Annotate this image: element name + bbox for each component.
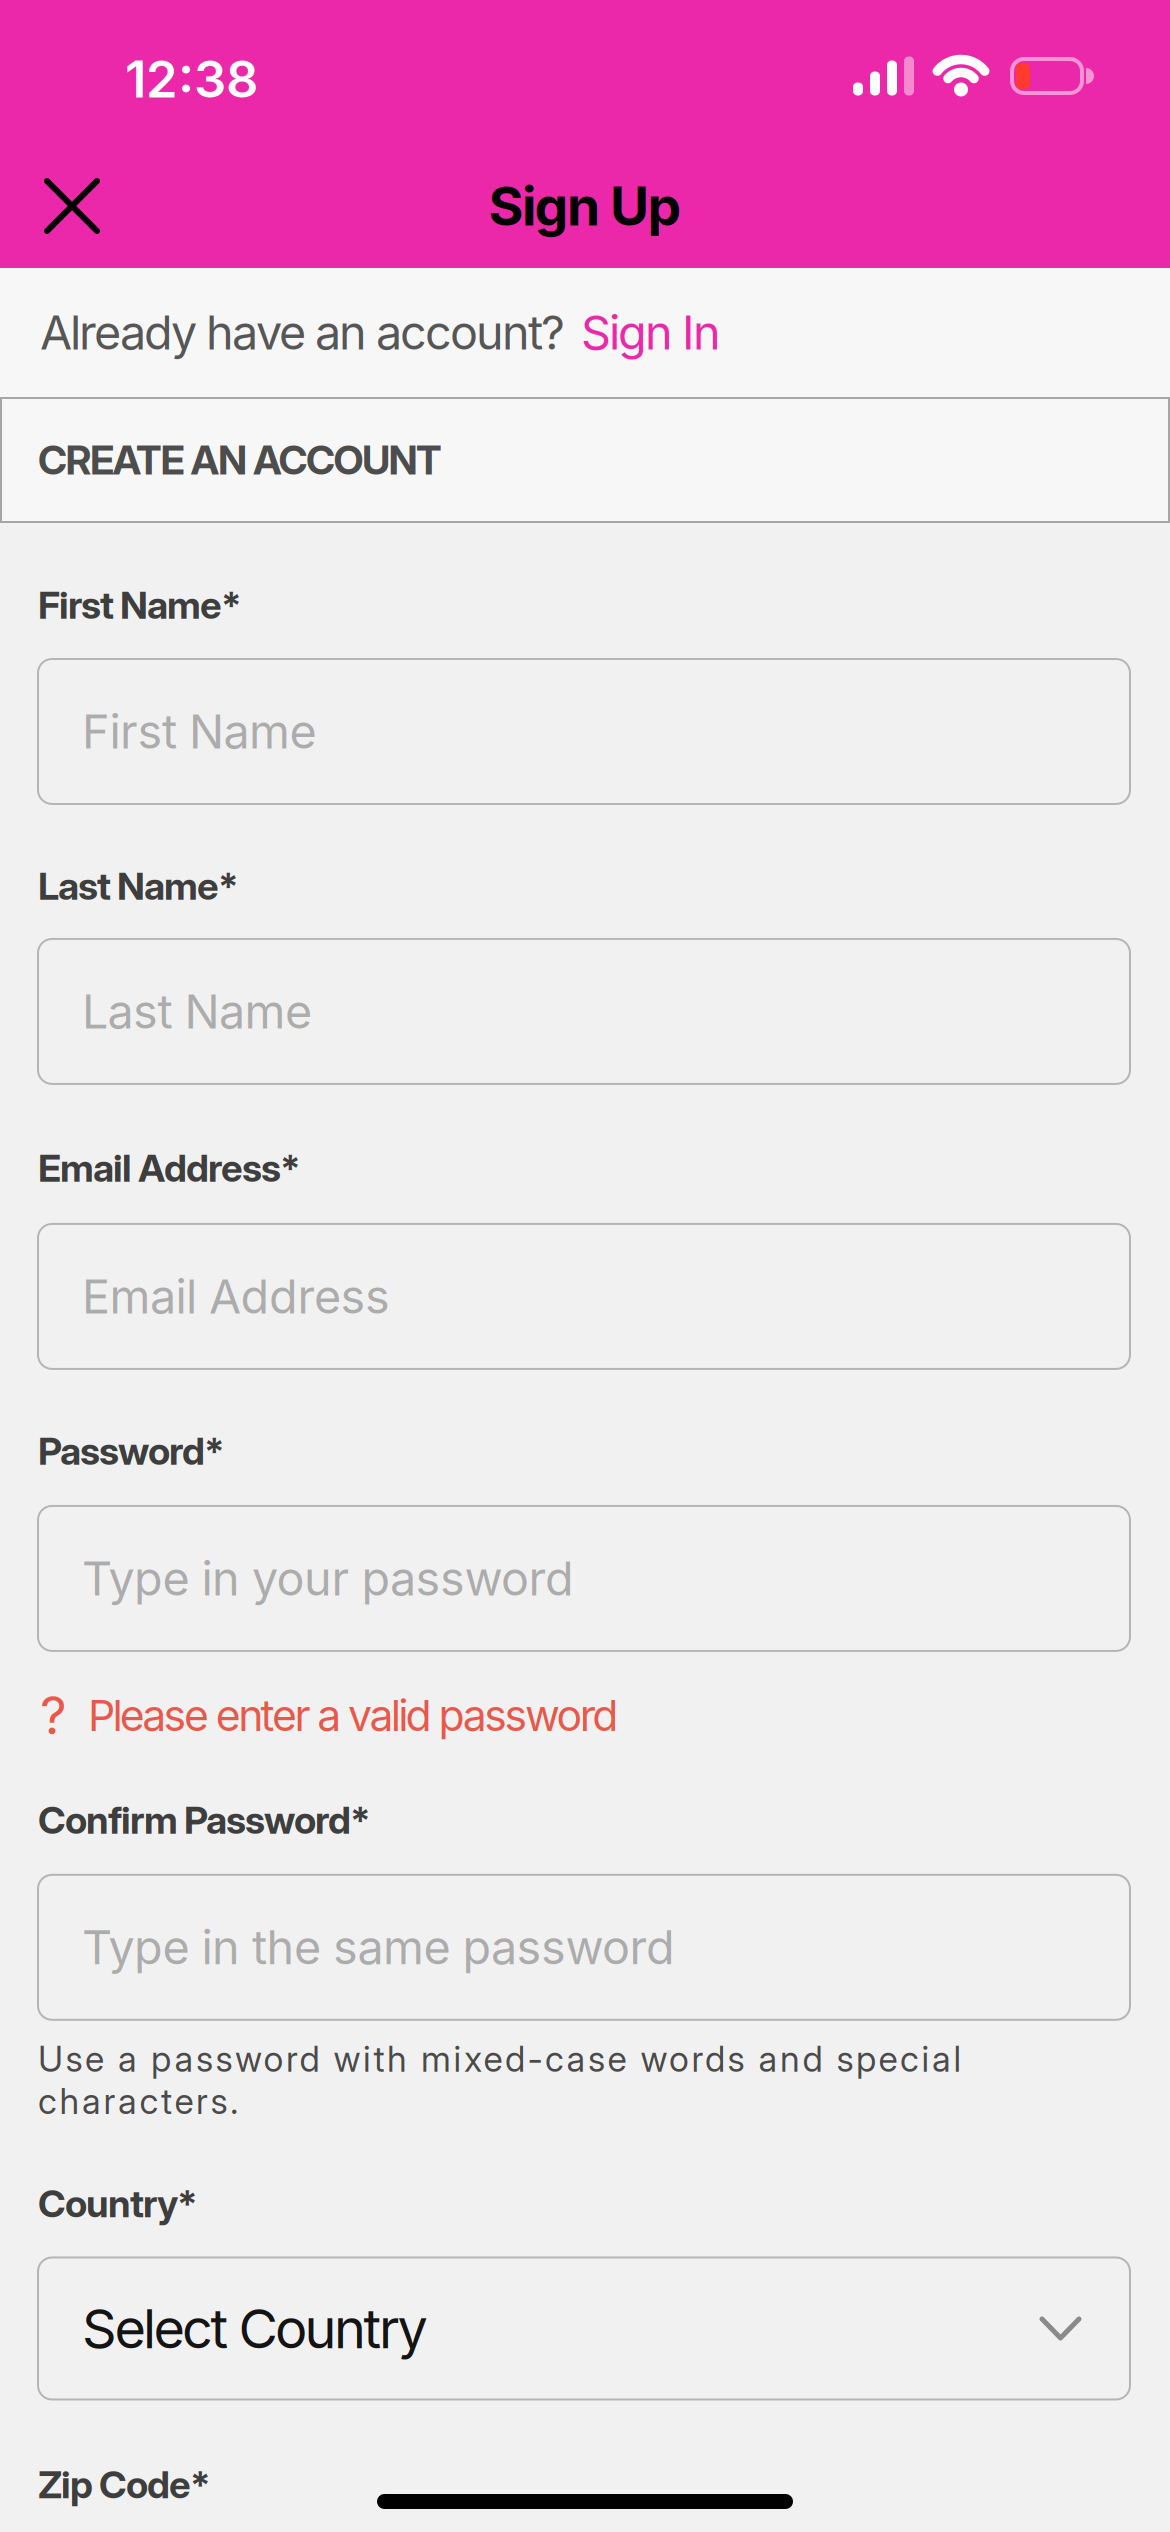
button[interactable]: Sign In [581, 304, 721, 361]
staticText: Type in the same password [82, 1919, 675, 1976]
staticText: ? [40, 1684, 67, 1747]
button[interactable]: CREATE AN ACCOUNT [0, 397, 1170, 523]
staticText: Confirm Password* [38, 1797, 371, 1843]
staticText: Email Address* [38, 1145, 301, 1191]
button[interactable]: Last Name [0, 938, 1170, 1085]
staticText: Country* [38, 2180, 198, 2226]
staticText: Already have an account? [40, 304, 565, 361]
staticText: Last Name [82, 983, 312, 1040]
button[interactable]: First Name [0, 658, 1170, 805]
staticText: Last Name* [38, 863, 239, 909]
staticText: Sign In [581, 304, 721, 361]
staticText: Please enter a valid password [88, 1690, 618, 1741]
staticText: 12:38 [125, 48, 258, 110]
staticText: Password* [38, 1428, 225, 1474]
staticText: CREATE AN ACCOUNT [38, 436, 442, 484]
staticText: First Name* [38, 582, 242, 628]
staticText: First Name [82, 703, 316, 760]
button[interactable]: Type in the same password [0, 1874, 1170, 2021]
button[interactable]: Email Address [0, 1223, 1170, 1370]
staticText: Sign Up [488, 174, 681, 238]
staticText: Type in your password [82, 1550, 574, 1607]
staticText: Use a password with mixed-case words and… [38, 2038, 961, 2122]
button[interactable] [0, 181, 97, 231]
button[interactable]: Select Country [0, 2256, 1170, 2400]
staticText: Zip Code* [38, 2461, 211, 2507]
button[interactable]: Type in your password [0, 1505, 1170, 1652]
staticText: Select Country [82, 2296, 427, 2361]
staticText: Email Address [82, 1268, 390, 1325]
